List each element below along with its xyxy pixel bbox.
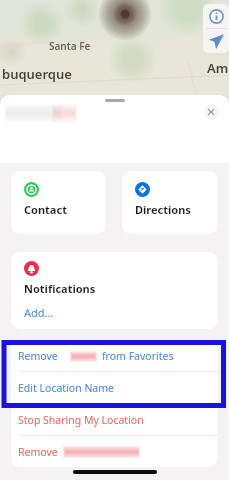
- staticText: Santa Fe: [49, 39, 91, 53]
- button[interactable]: Stop Sharing My Location: [11, 404, 218, 435]
- button[interactable]: Add...: [24, 305, 54, 320]
- button[interactable]: Contact: [11, 171, 106, 234]
- staticText: Notifications: [24, 281, 96, 296]
- button[interactable]: Edit Location Name: [11, 372, 218, 403]
- button[interactable]: Close: [203, 104, 219, 120]
- staticText: Remove: [18, 445, 58, 459]
- staticText: Am: [207, 59, 229, 77]
- staticText: Directions: [135, 202, 191, 217]
- button[interactable]: Remove: [11, 436, 218, 467]
- button[interactable]: Locate me: [203, 29, 229, 53]
- staticText: Add...: [24, 305, 54, 320]
- button[interactable]: Remove: [11, 340, 218, 371]
- staticText: Remove: [18, 349, 58, 363]
- staticText: from Favorites: [102, 349, 174, 363]
- staticText: Stop Sharing My Location: [18, 413, 144, 427]
- button[interactable]: Info: [203, 4, 229, 28]
- staticText: buquerque: [2, 65, 72, 83]
- button[interactable]: Directions: [122, 171, 218, 234]
- staticText: Edit Location Name: [18, 381, 114, 395]
- staticText: Contact: [24, 202, 67, 217]
